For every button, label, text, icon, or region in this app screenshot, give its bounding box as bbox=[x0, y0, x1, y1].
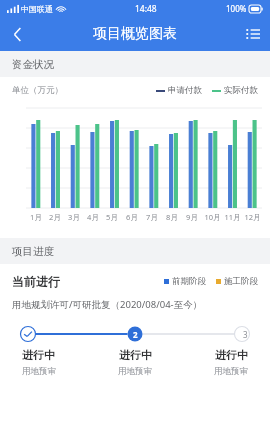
staticText: 3 bbox=[243, 329, 248, 340]
staticText: 10月 bbox=[204, 212, 221, 222]
staticText: 前期阶段 bbox=[172, 276, 206, 287]
staticText: 6月 bbox=[126, 212, 138, 222]
staticText: 施工阶段 bbox=[224, 276, 258, 287]
staticText: 用地预审 bbox=[22, 366, 56, 377]
staticText: 进行中 bbox=[119, 348, 152, 362]
staticText: 中国联通 bbox=[21, 4, 53, 14]
staticText: 100% bbox=[226, 3, 247, 14]
staticText: 7月 bbox=[146, 212, 158, 222]
staticText: 5月 bbox=[106, 212, 118, 222]
staticText: 11月 bbox=[224, 212, 241, 222]
staticText: 用地预审 bbox=[214, 366, 248, 377]
staticText: 进行中 bbox=[22, 348, 55, 362]
staticText: 申请付款 bbox=[168, 85, 202, 96]
staticText: 用地规划许可/可研批复（2020/08/04-至今） bbox=[12, 298, 203, 311]
staticText: 8月 bbox=[166, 212, 178, 222]
staticText: 当前进行 bbox=[12, 274, 60, 289]
button[interactable]: Menu bbox=[236, 17, 270, 51]
staticText: 3月 bbox=[68, 212, 80, 222]
staticText: 进行中 bbox=[215, 348, 248, 362]
staticText: 资金状况 bbox=[12, 58, 54, 71]
staticText: 2 bbox=[133, 329, 138, 340]
staticText: 用地预审 bbox=[118, 366, 152, 377]
staticText: 项目进度 bbox=[12, 245, 54, 258]
staticText: 2月 bbox=[49, 212, 61, 222]
staticText: 1月 bbox=[30, 212, 42, 222]
staticText: 12月 bbox=[244, 212, 261, 222]
staticText: 项目概览图表 bbox=[93, 25, 177, 43]
staticText: 14:48 bbox=[135, 3, 157, 15]
staticText: 9月 bbox=[186, 212, 198, 222]
staticText: 单位（万元） bbox=[12, 85, 63, 96]
button[interactable]: Back bbox=[0, 17, 34, 51]
staticText: 实际付款 bbox=[224, 85, 258, 96]
staticText: 4月 bbox=[87, 212, 99, 222]
